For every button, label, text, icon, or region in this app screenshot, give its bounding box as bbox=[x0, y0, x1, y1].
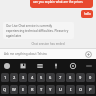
staticText: Chat session has ended bbox=[31, 42, 65, 46]
button[interactable]: Voice input bbox=[52, 62, 60, 70]
button[interactable]: Y bbox=[46, 85, 55, 94]
staticText: 1 bbox=[4, 75, 7, 80]
button[interactable]: 9 bbox=[76, 73, 85, 82]
button[interactable]: Send bbox=[85, 51, 92, 58]
button[interactable]: 0 bbox=[86, 73, 95, 82]
staticText: E bbox=[22, 87, 25, 92]
button[interactable]: Settings bbox=[69, 62, 77, 70]
button[interactable]: Sticker bbox=[36, 62, 44, 70]
button[interactable]: O bbox=[76, 85, 85, 94]
staticText: Ask me anything about Telstra bbox=[4, 52, 47, 56]
staticText: T bbox=[40, 87, 43, 92]
staticText: can you explain what are the prices bbox=[33, 0, 83, 4]
button[interactable]: can you explain what are the prices bbox=[30, 0, 93, 8]
button[interactable]: R bbox=[28, 85, 36, 94]
staticText: hello bbox=[84, 12, 91, 16]
button[interactable]: 1 bbox=[1, 73, 9, 82]
button[interactable]: More options bbox=[85, 62, 93, 70]
staticText: P bbox=[89, 87, 92, 92]
button[interactable]: Our Live Chat service is currently exper… bbox=[3, 22, 74, 39]
staticText: 9 bbox=[79, 75, 82, 80]
button[interactable]: U bbox=[56, 85, 65, 94]
button[interactable]: Q bbox=[1, 85, 9, 94]
staticText: 0 bbox=[89, 75, 92, 80]
button[interactable]: Ask me anything about Telstra bbox=[4, 52, 85, 56]
staticText: Our Live Chat service is currently exper… bbox=[6, 24, 71, 37]
staticText: 6 bbox=[49, 75, 52, 80]
button[interactable]: 4 bbox=[28, 73, 36, 82]
staticText: Y bbox=[49, 87, 52, 92]
staticText: 2 bbox=[13, 75, 16, 80]
button[interactable]: hello bbox=[81, 10, 93, 18]
staticText: 7 bbox=[59, 75, 62, 80]
button[interactable]: W bbox=[10, 85, 18, 94]
staticText: Q bbox=[3, 87, 7, 92]
button[interactable]: GIF bbox=[19, 62, 27, 70]
button[interactable]: 8 bbox=[66, 73, 75, 82]
button[interactable]: 6 bbox=[46, 73, 55, 82]
button[interactable]: 2 bbox=[10, 73, 18, 82]
staticText: U bbox=[59, 87, 62, 92]
staticText: 5 bbox=[40, 75, 43, 80]
button[interactable]: I bbox=[66, 85, 75, 94]
button[interactable]: E bbox=[19, 85, 27, 94]
staticText: R bbox=[31, 87, 34, 92]
button[interactable]: 7 bbox=[56, 73, 65, 82]
button[interactable]: 3 bbox=[19, 73, 27, 82]
button[interactable]: P bbox=[86, 85, 95, 94]
button[interactable]: T bbox=[37, 85, 45, 94]
button[interactable]: 5 bbox=[37, 73, 45, 82]
staticText: O bbox=[79, 87, 83, 92]
staticText: I bbox=[70, 87, 72, 92]
button[interactable]: Emoji bbox=[3, 62, 11, 70]
staticText: 4 bbox=[31, 75, 34, 80]
staticText: 3 bbox=[22, 75, 25, 80]
staticText: 8 bbox=[69, 75, 72, 80]
staticText: W bbox=[12, 87, 16, 92]
